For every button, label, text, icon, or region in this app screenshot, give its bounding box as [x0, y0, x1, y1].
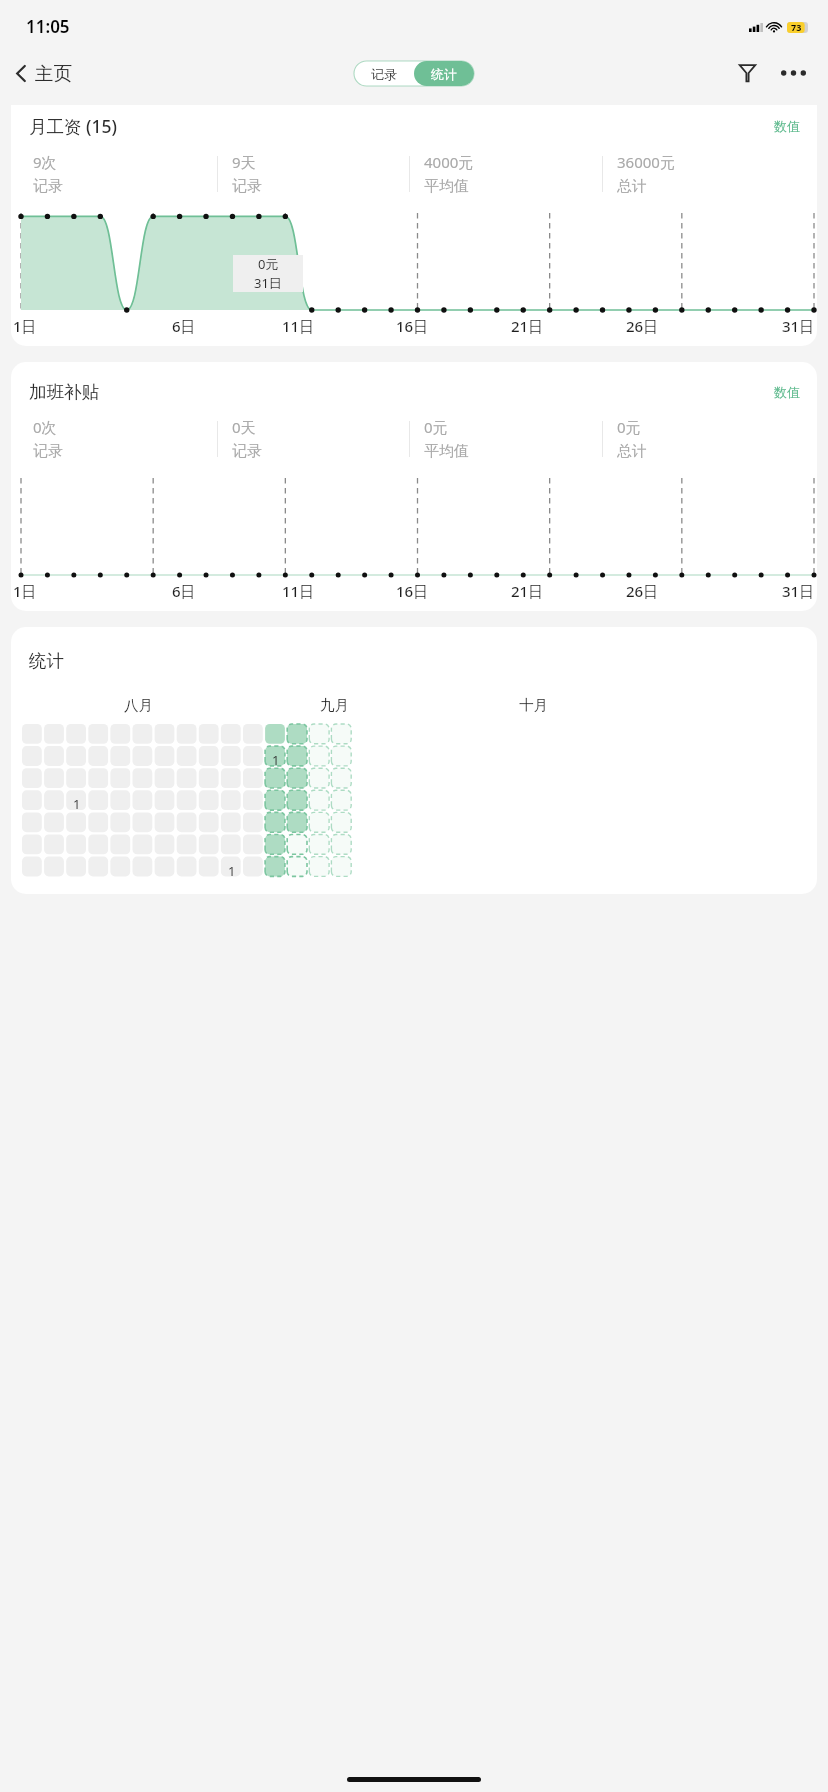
- staticText: 31日: [782, 581, 815, 601]
- staticText: 加班补贴: [29, 381, 99, 403]
- staticText: 26日: [626, 316, 659, 336]
- staticText: 记录: [33, 442, 63, 461]
- staticText: 11日: [282, 581, 315, 601]
- staticText: 1日: [13, 316, 37, 336]
- staticText: 记录: [33, 177, 63, 196]
- staticText: 9次: [33, 152, 57, 172]
- staticText: 21日: [511, 581, 544, 601]
- staticText: 1: [228, 862, 236, 880]
- staticText: 16日: [396, 316, 429, 336]
- button[interactable]: 记录: [354, 61, 414, 86]
- staticText: 1日: [13, 581, 37, 601]
- staticText: 0次: [33, 417, 57, 437]
- staticText: 平均值: [424, 177, 469, 196]
- staticText: 总计: [617, 177, 647, 196]
- staticText: 数值: [774, 118, 800, 134]
- staticText: 9天: [232, 152, 256, 172]
- staticText: 十月: [519, 696, 548, 714]
- staticText: 平均值: [424, 442, 469, 461]
- staticText: 数值: [774, 384, 800, 400]
- staticText: 记录: [371, 66, 397, 82]
- button[interactable]: 统计: [414, 61, 474, 86]
- staticText: 八月: [124, 696, 153, 714]
- staticText: 36000元: [617, 152, 675, 172]
- button[interactable]: 主页: [8, 56, 80, 91]
- staticText: 0元: [617, 417, 641, 437]
- staticText: 月工资 (15): [29, 114, 117, 138]
- staticText: 记录: [232, 442, 262, 461]
- button[interactable]: 统计: [11, 627, 817, 894]
- staticText: 统计: [29, 650, 64, 672]
- staticText: 记录: [232, 177, 262, 196]
- button[interactable]: 加班补贴: [11, 362, 817, 611]
- staticText: 0天: [232, 417, 256, 437]
- button[interactable]: 月工资 (15): [11, 105, 817, 346]
- staticText: 0元: [258, 255, 279, 273]
- button[interactable]: Filter: [726, 52, 768, 94]
- staticText: 11:05: [26, 15, 70, 38]
- staticText: 1: [272, 751, 280, 769]
- staticText: 21日: [511, 316, 544, 336]
- button[interactable]: More options: [772, 52, 814, 94]
- staticText: 统计: [431, 66, 457, 82]
- staticText: 九月: [320, 696, 349, 714]
- staticText: 31日: [254, 274, 282, 292]
- staticText: 6日: [172, 581, 196, 601]
- staticText: 主页: [35, 62, 72, 85]
- staticText: 26日: [626, 581, 659, 601]
- staticText: 1: [73, 795, 81, 813]
- staticText: 4000元: [424, 152, 474, 172]
- staticText: 11日: [282, 316, 315, 336]
- staticText: 6日: [172, 316, 196, 336]
- staticText: 73: [791, 21, 802, 33]
- staticText: 31日: [782, 316, 815, 336]
- staticText: 0元: [424, 417, 448, 437]
- staticText: 总计: [617, 442, 647, 461]
- staticText: 16日: [396, 581, 429, 601]
